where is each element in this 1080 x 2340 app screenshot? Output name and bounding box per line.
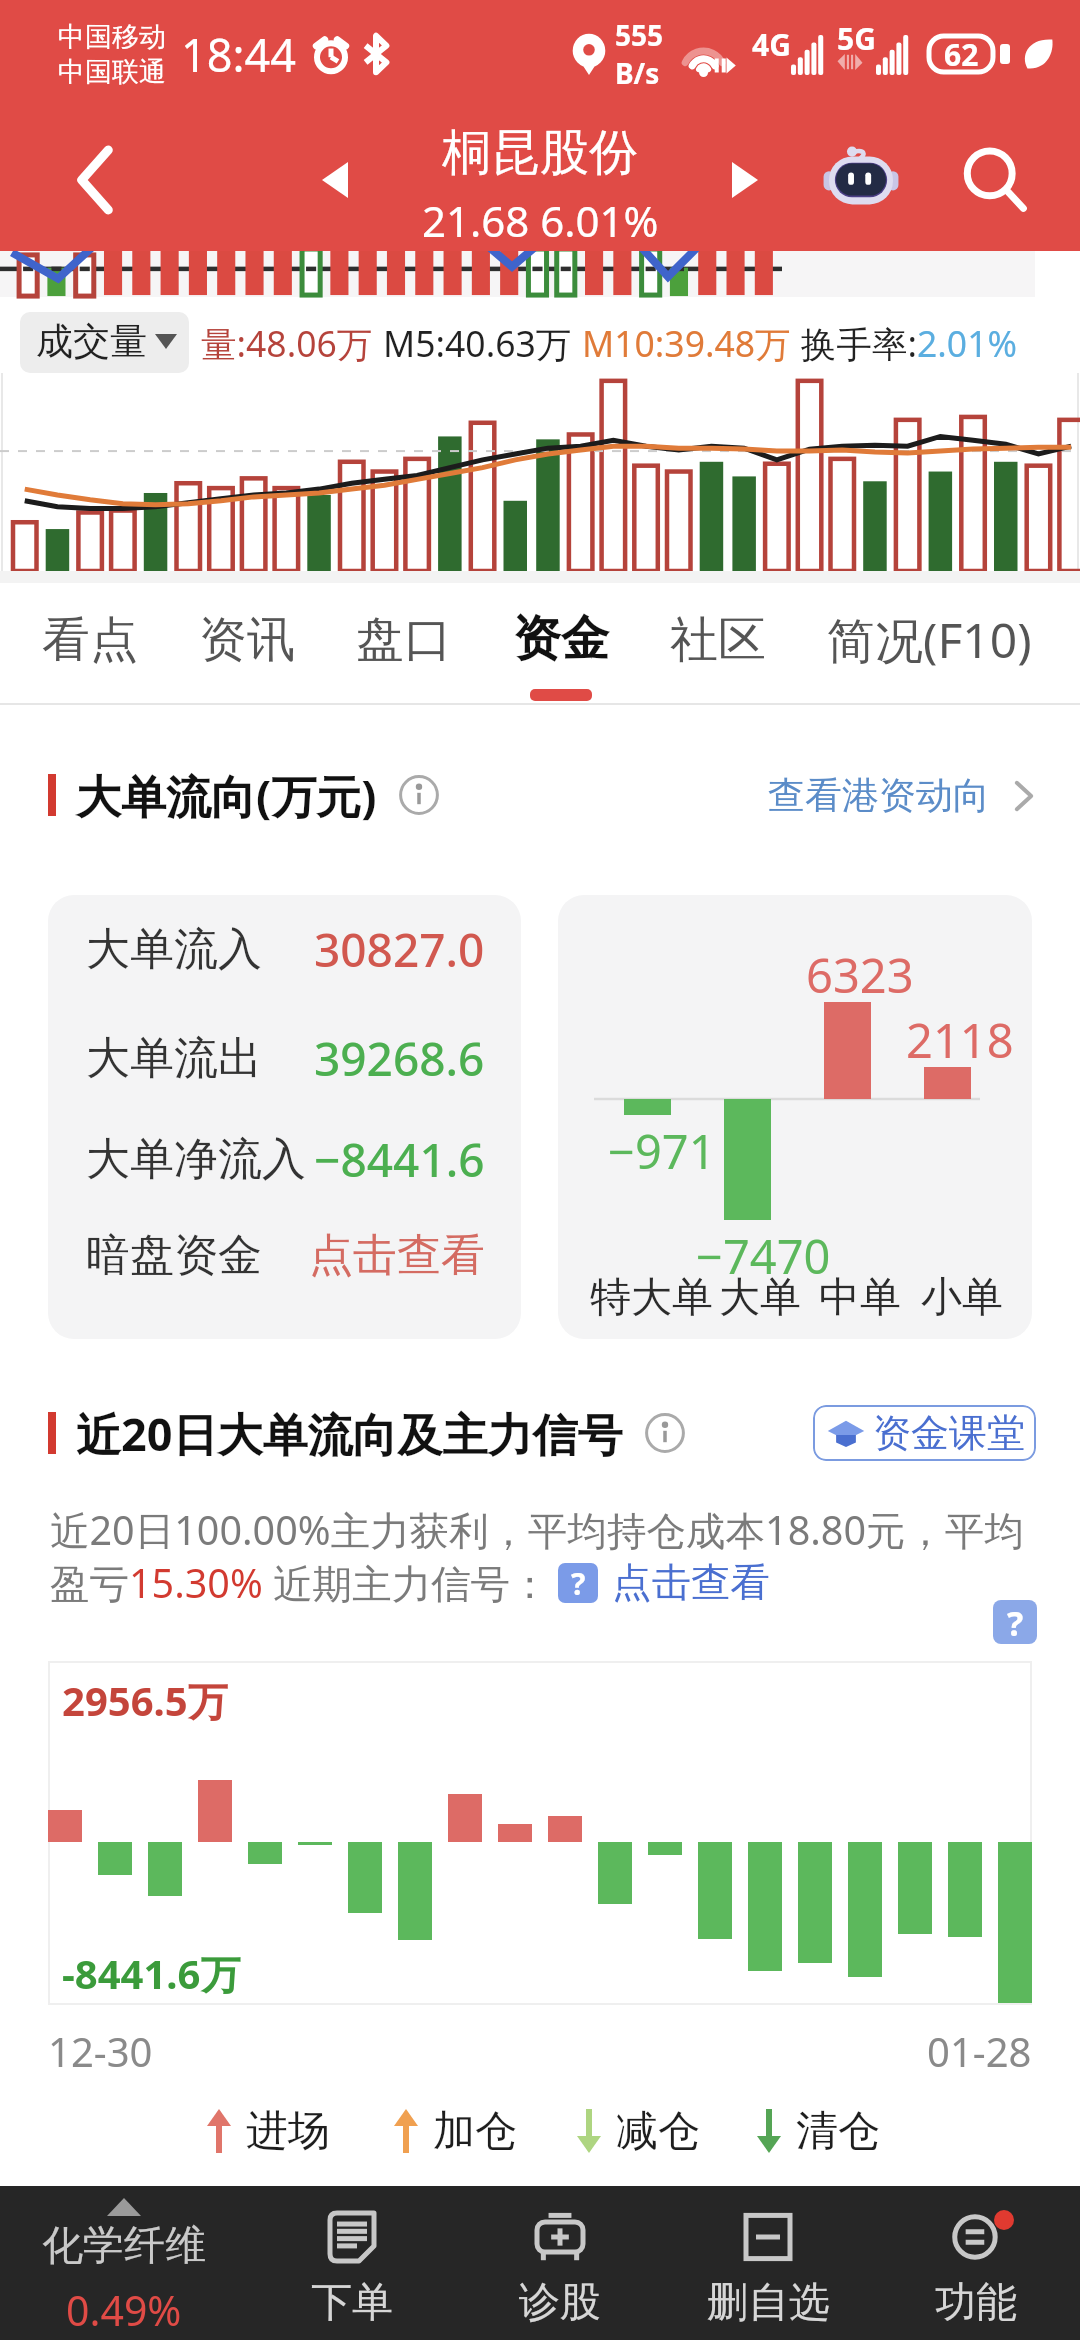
button[interactable]: 简况(F10) — [827, 605, 1032, 705]
staticText: 30827.0 — [314, 918, 485, 981]
button[interactable]: Search — [950, 136, 1040, 224]
button[interactable]: Next stock — [700, 140, 790, 220]
button[interactable]: 社区 — [670, 605, 766, 705]
staticText: 化学纤维 — [42, 2220, 206, 2272]
button[interactable]: 化学纤维 — [0, 2186, 248, 2340]
button[interactable]: AI assistant — [812, 128, 910, 224]
button[interactable]: Back — [40, 132, 150, 228]
staticText: ? — [571, 1563, 586, 1603]
staticText: 4G — [752, 24, 791, 65]
staticText: 下单 — [311, 2277, 393, 2329]
button[interactable]: 资金课堂 — [813, 1405, 1036, 1461]
staticText: 中单 — [819, 1272, 901, 1324]
staticText: 暗盘资金 — [86, 1228, 262, 1283]
staticText: 清仓 — [796, 2105, 880, 2158]
button[interactable]: 下单 — [248, 2186, 456, 2340]
staticText: 39268.6 — [314, 1027, 485, 1090]
staticText: 简况(F10) — [827, 607, 1032, 673]
button[interactable]: 成交量 — [20, 312, 189, 373]
staticText: 资讯 — [199, 610, 295, 670]
staticText: 换手率:2.01% — [801, 319, 1017, 367]
staticText: 2118 — [906, 1008, 1014, 1072]
staticText: M5:40.63万 — [383, 319, 572, 367]
staticText: 加仓 — [433, 2105, 517, 2158]
staticText: 诊股 — [519, 2277, 601, 2329]
staticText: 功能 — [935, 2277, 1017, 2329]
staticText: 近20日100.00%主力获利，平均持仓成本18.80元，平均 — [50, 1503, 1025, 1557]
staticText: B/s — [615, 54, 660, 92]
staticText: 资金课堂 — [873, 1409, 1025, 1457]
staticText: 18:44 — [181, 24, 297, 85]
button[interactable]: Help — [993, 1600, 1037, 1644]
staticText: −971 — [608, 1119, 716, 1183]
button[interactable]: 大单流入 — [48, 895, 521, 1339]
staticText: 中国联通 — [58, 55, 166, 89]
staticText: 盘口 — [356, 610, 452, 670]
button[interactable]: Info — [399, 775, 439, 815]
button[interactable]: 资金 — [513, 605, 609, 705]
staticText: 大单流向(万元) — [76, 765, 377, 826]
staticText: 大单 — [719, 1272, 801, 1324]
button[interactable]: 删自选 — [664, 2186, 872, 2340]
staticText: 盈亏15.30% 近期主力信号： — [50, 1556, 550, 1610]
staticText: −8441.6 — [314, 1128, 485, 1191]
staticText: 2956.5万 — [62, 1673, 228, 1728]
staticText: ? — [1007, 1600, 1024, 1644]
staticText: −7470 — [696, 1224, 831, 1288]
staticText: 6323 — [806, 943, 914, 1007]
button[interactable]: Info — [645, 1413, 685, 1453]
staticText: 减仓 — [616, 2105, 700, 2158]
button[interactable]: 查看港资动向 — [768, 772, 1036, 819]
button[interactable]: 资讯 — [199, 605, 295, 705]
staticText: 查看港资动向 — [768, 772, 990, 819]
button[interactable]: 诊股 — [456, 2186, 664, 2340]
staticText: M10:39.48万 — [582, 319, 791, 367]
staticText: 社区 — [670, 610, 766, 670]
button[interactable]: 点击查看 — [612, 1558, 770, 1608]
staticText: 量:48.06万 — [201, 319, 373, 367]
staticText: 大单流出 — [86, 1031, 262, 1086]
staticText: 大单净流入 — [86, 1132, 306, 1187]
staticText: 01-28 — [927, 2024, 1032, 2078]
staticText: 删自选 — [707, 2277, 830, 2329]
staticText: 特大单 — [590, 1272, 713, 1324]
staticText: 桐昆股份 — [442, 122, 638, 184]
staticText: 小单 — [921, 1272, 1003, 1324]
staticText: 资金 — [513, 609, 609, 669]
staticText: 点击查看 — [309, 1228, 485, 1283]
staticText: 0.49% — [66, 2282, 182, 2338]
staticText: 近20日大单流向及主力信号 — [76, 1403, 623, 1464]
staticText: -8441.6万 — [62, 1946, 241, 2001]
staticText: 555 — [615, 16, 664, 54]
button[interactable]: Previous stock — [290, 140, 380, 220]
button[interactable]: 盘口 — [356, 605, 452, 705]
staticText: 进场 — [246, 2105, 330, 2158]
button[interactable]: 看点 — [42, 605, 138, 705]
button[interactable]: 功能 — [872, 2186, 1080, 2340]
staticText: 62 — [944, 34, 979, 75]
staticText: 中国移动 — [58, 20, 166, 54]
staticText: 成交量 — [36, 318, 147, 365]
staticText: 21.68 6.01% — [422, 192, 659, 249]
staticText: 看点 — [42, 610, 138, 670]
staticText: 12-30 — [48, 2024, 153, 2078]
staticText: 大单流入 — [86, 922, 262, 977]
staticText: 5G — [837, 18, 876, 59]
button[interactable]: 6323 — [558, 895, 1032, 1339]
